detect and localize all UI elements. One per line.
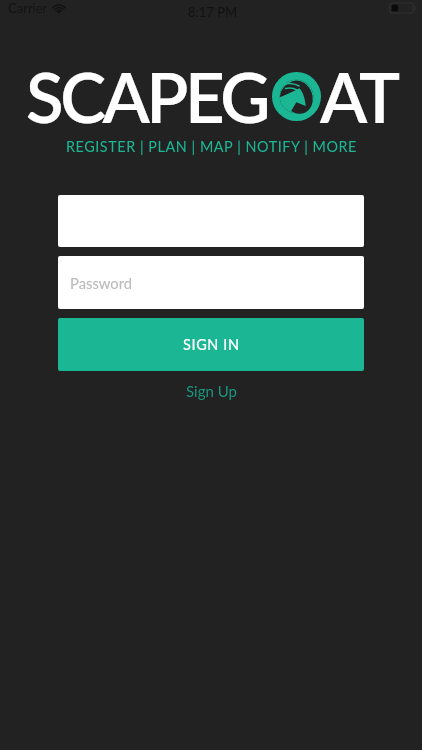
staticText: 8:17 PM	[188, 4, 238, 20]
button[interactable]: Password	[58, 256, 364, 309]
staticText: Carrier	[8, 0, 48, 16]
staticText: SIGN IN	[183, 336, 240, 353]
staticText: Password	[70, 274, 133, 292]
staticText: AT	[320, 55, 397, 138]
button[interactable]: Sign Up	[162, 377, 261, 405]
button[interactable]: SIGN IN	[58, 318, 364, 371]
staticText: Sign Up	[186, 382, 237, 400]
staticText: REGISTER | PLAN | MAP | NOTIFY | MORE	[66, 138, 357, 155]
staticText: SCAPEG	[26, 55, 267, 138]
